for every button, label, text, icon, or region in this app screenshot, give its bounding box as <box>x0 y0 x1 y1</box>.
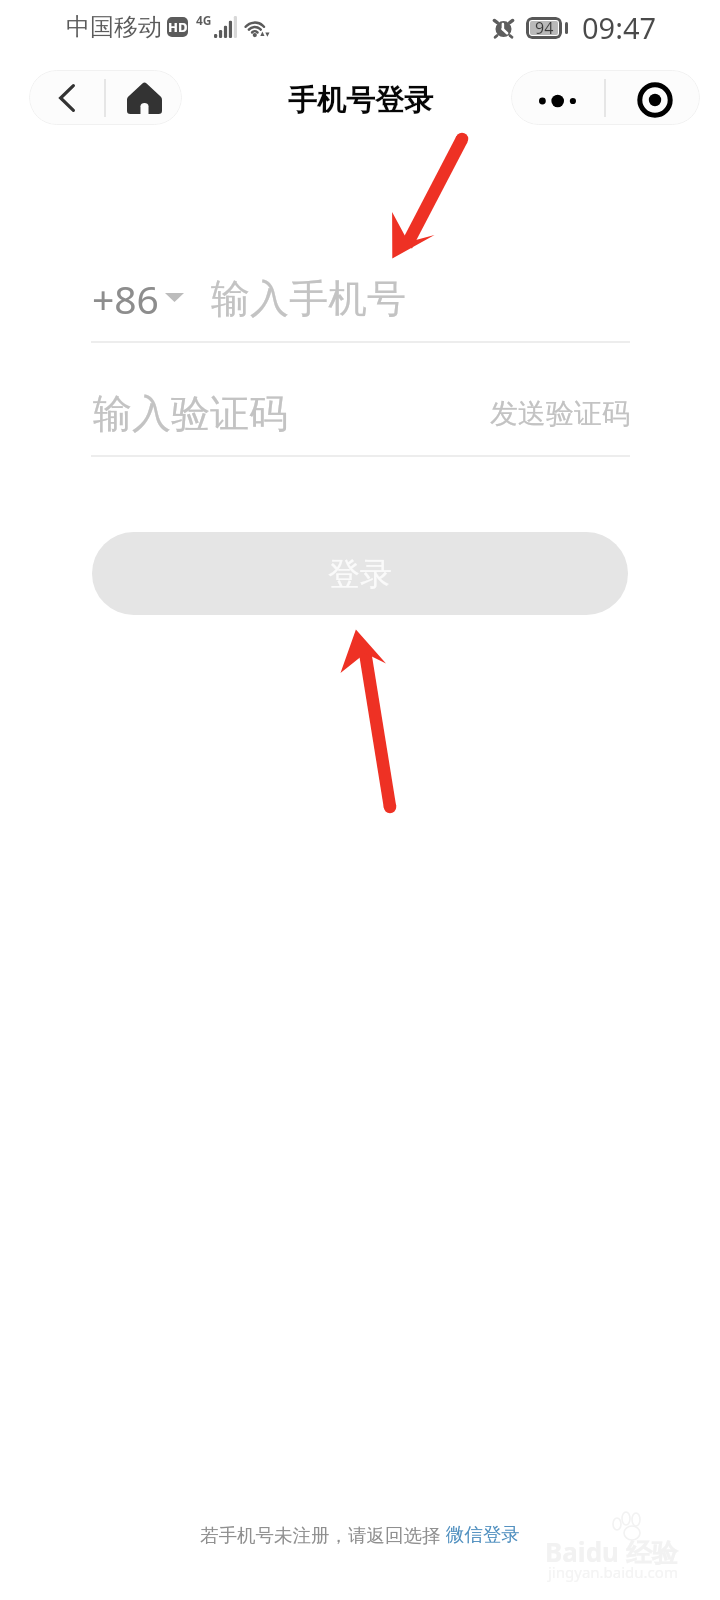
staticText: 09:47 <box>582 8 657 47</box>
button[interactable]: 登录 <box>92 532 628 615</box>
staticText: 输入手机号 <box>211 274 406 323</box>
button[interactable]: +86 <box>92 272 184 325</box>
staticText: HD <box>168 18 188 36</box>
staticText: 微信登录 <box>446 1523 520 1546</box>
staticText: 输入验证码 <box>93 389 288 438</box>
staticText: +86 <box>92 272 159 325</box>
staticText: 4G <box>196 12 212 28</box>
staticText: 登录 <box>328 554 392 594</box>
staticText: 94 <box>535 17 554 39</box>
staticText: 发送验证码 <box>490 396 630 431</box>
button[interactable]: More options <box>511 70 604 125</box>
staticText: 手机号登录 <box>288 82 433 119</box>
button[interactable]: 发送验证码 <box>490 396 630 431</box>
staticText: jingyan.baidu.com <box>548 1562 678 1582</box>
staticText: 中国移动 <box>66 12 162 42</box>
staticText: 若手机号未注册，请返回选择 <box>200 1522 446 1547</box>
button[interactable]: 微信登录 <box>446 1523 520 1546</box>
button[interactable]: Close <box>606 70 700 125</box>
button[interactable]: Back <box>29 70 104 125</box>
staticText: Baidu 经验 <box>545 1534 678 1570</box>
button[interactable]: More options <box>511 70 700 125</box>
button[interactable]: Back <box>29 70 182 125</box>
button[interactable]: Home <box>106 70 182 125</box>
